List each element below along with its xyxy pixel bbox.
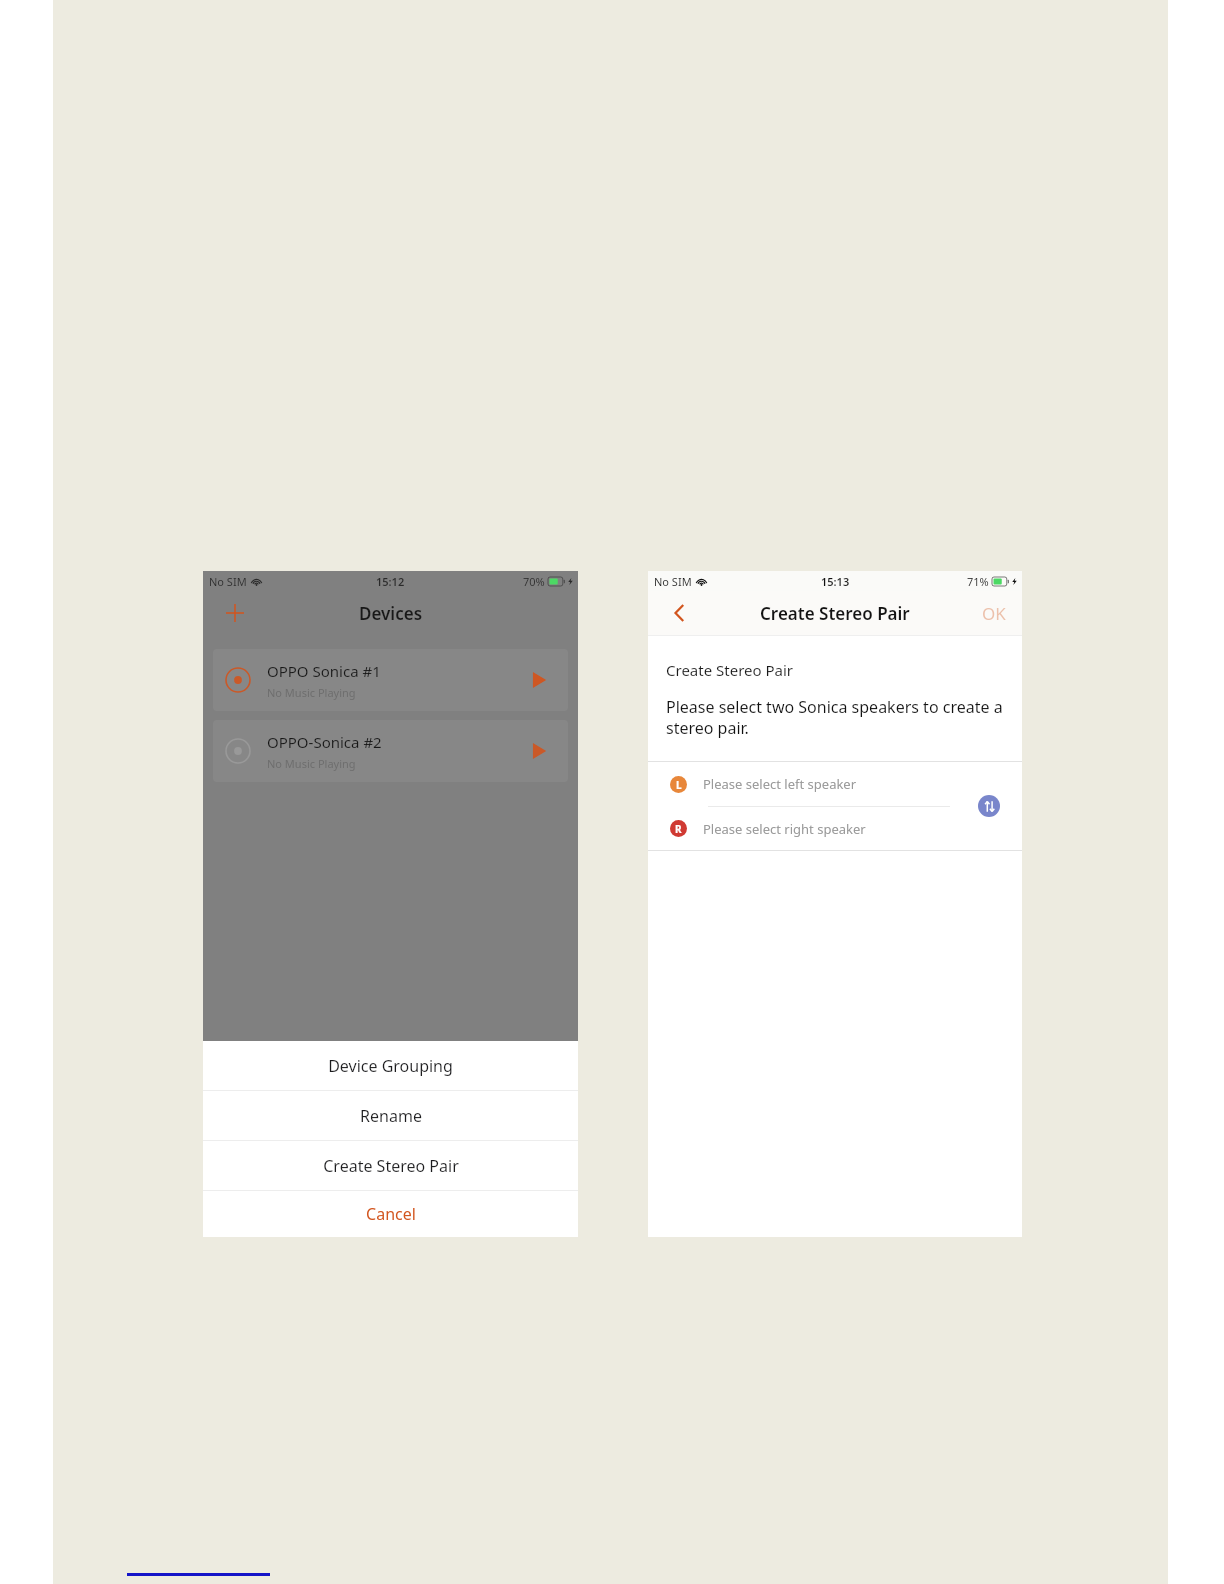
button[interactable]: R <box>648 807 1022 850</box>
button[interactable]: Play <box>522 734 556 768</box>
staticText: Create Stereo Pair <box>666 660 794 680</box>
staticText: Devices <box>359 602 423 625</box>
staticText: 15:12 <box>376 574 405 589</box>
button[interactable]: Device Grouping <box>203 1041 578 1090</box>
staticText: Create Stereo Pair <box>323 1155 459 1177</box>
staticText: Create Stereo Pair <box>760 602 910 625</box>
staticText: R <box>675 822 682 836</box>
staticText: 70% <box>523 574 545 589</box>
button[interactable]: Add device <box>217 595 253 631</box>
staticText: Please select two Sonica speakers to cre… <box>666 696 1004 739</box>
staticText: Cancel <box>366 1203 416 1225</box>
button[interactable]: Back <box>660 593 700 633</box>
staticText: L <box>676 778 682 792</box>
button[interactable]: Cancel <box>203 1191 578 1237</box>
staticText: No Music Playing <box>267 756 356 771</box>
button[interactable]: Swap left and right speakers <box>978 795 1000 817</box>
staticText: Please select left speaker <box>703 775 857 793</box>
button[interactable]: Rename <box>203 1091 578 1140</box>
staticText: Rename <box>360 1105 422 1127</box>
staticText: No Music Playing <box>267 685 356 700</box>
staticText: OPPO-Sonica #2 <box>267 732 382 752</box>
button[interactable]: OPPO Sonica #1 <box>213 649 568 711</box>
button[interactable]: Play <box>522 663 556 697</box>
staticText: No SIM <box>209 574 247 589</box>
staticText: 71% <box>967 574 989 589</box>
staticText: OK <box>982 602 1006 625</box>
staticText: Please select right speaker <box>703 820 866 838</box>
staticText: 15:13 <box>821 574 850 589</box>
staticText: OPPO Sonica #1 <box>267 661 381 681</box>
button[interactable]: L <box>648 762 1022 806</box>
staticText: Device Grouping <box>328 1055 453 1077</box>
button[interactable]: OPPO-Sonica #2 <box>213 720 568 782</box>
button[interactable]: OK <box>978 596 1010 631</box>
staticText: No SIM <box>654 574 692 589</box>
button[interactable]: Create Stereo Pair <box>203 1141 578 1190</box>
